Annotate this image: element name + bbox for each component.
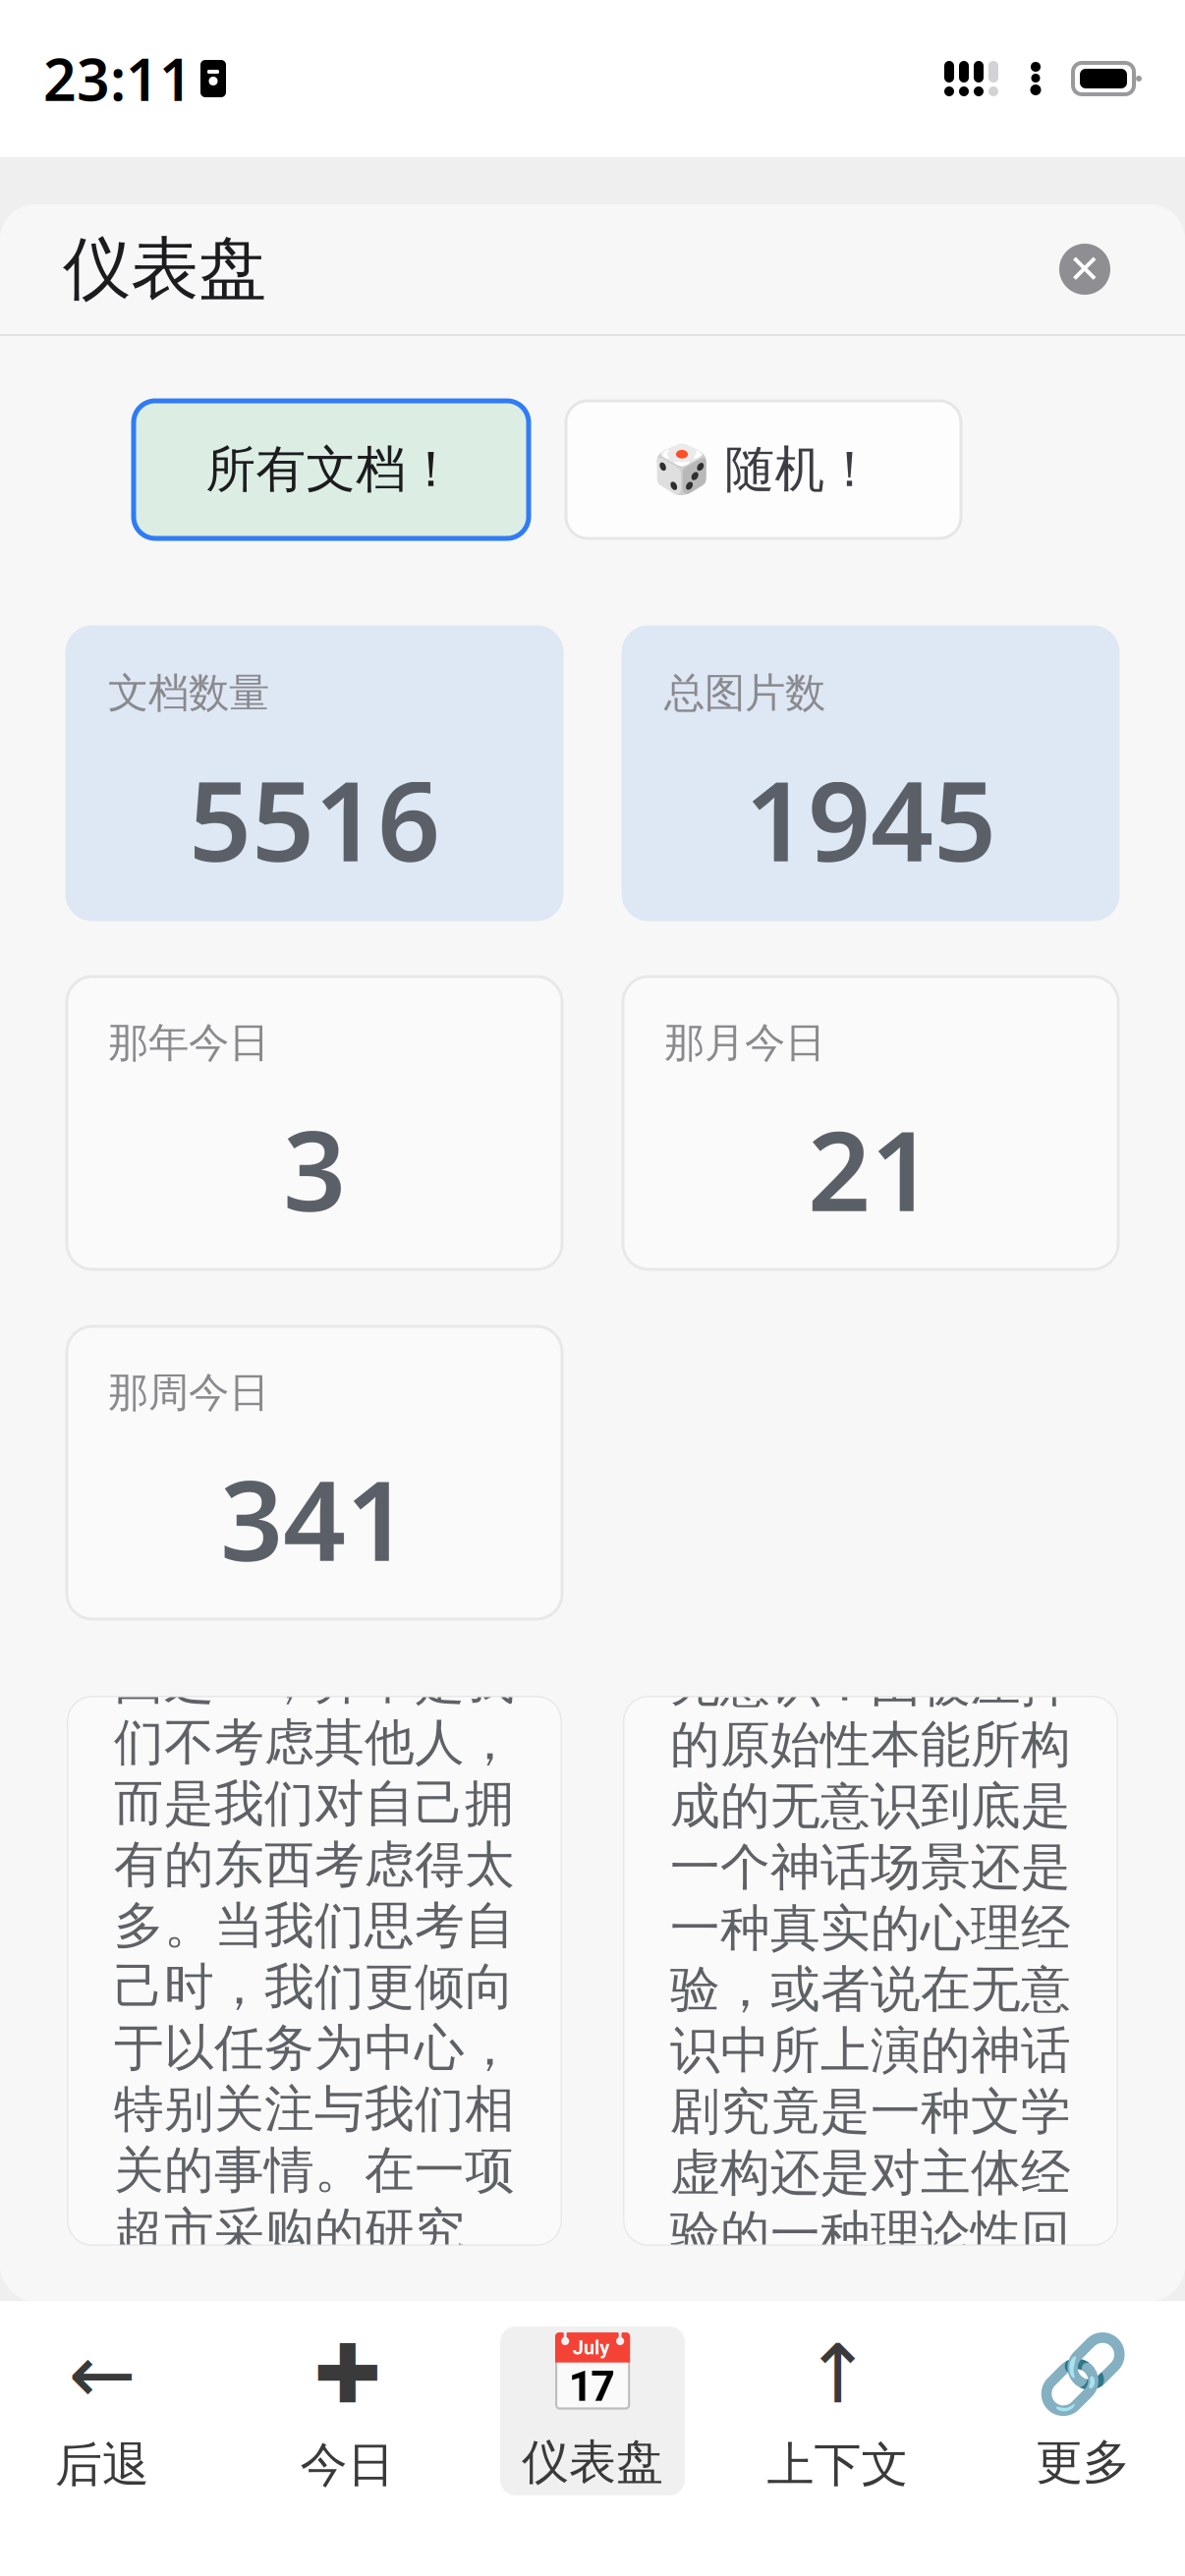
staticText: 弗洛伊德为什么非要用性本能来装扮无意识？由被压抑的原始性本能所构成的无意识到底是…: [670, 1531, 1071, 2448]
staticText: 341: [220, 1445, 409, 1591]
staticText: ✕: [1068, 247, 1101, 291]
staticText: 21: [808, 1095, 933, 1242]
staticText: 那月今日: [664, 1018, 825, 1068]
staticText: 🔗: [1036, 2331, 1130, 2418]
staticText: ✚: [313, 2328, 381, 2420]
staticText: 我们不太愿意分享我们的所有物的原因之一，并不是我们不考虑其他人，而是我们对自己拥…: [114, 1528, 515, 2451]
button[interactable]: 📅: [500, 2326, 685, 2495]
staticText: 1945: [745, 746, 996, 892]
staticText: 5516: [189, 746, 440, 892]
staticText: 后退: [55, 2436, 149, 2494]
staticText: 仪表盘: [522, 2433, 663, 2491]
button[interactable]: ←: [10, 2326, 195, 2495]
staticText: 随机！: [725, 439, 875, 500]
staticText: 仪表盘: [63, 227, 266, 311]
staticText: 那年今日: [108, 1018, 269, 1068]
staticText: 23:11: [43, 40, 193, 117]
staticText: 更多: [1036, 2433, 1130, 2491]
staticText: 上下文: [767, 2436, 908, 2494]
button[interactable]: ✚: [255, 2326, 440, 2495]
staticText: 3: [283, 1095, 346, 1242]
staticText: ←: [68, 2328, 136, 2420]
staticText: 总图片数: [664, 668, 825, 718]
staticText: 那周今日: [108, 1368, 269, 1417]
staticText: 所有文档！: [206, 439, 456, 500]
button[interactable]: 🎲: [566, 401, 961, 538]
button[interactable]: 关闭: [1047, 232, 1122, 307]
staticText: ↑: [804, 2328, 872, 2420]
button[interactable]: ↑: [745, 2326, 930, 2495]
staticText: 文档数量: [108, 668, 269, 718]
staticText: 📅: [545, 2331, 640, 2418]
button[interactable]: 所有文档！: [134, 401, 529, 538]
staticText: 🎲: [652, 443, 711, 497]
button[interactable]: 🔗: [990, 2326, 1175, 2495]
staticText: 今日: [300, 2436, 395, 2494]
